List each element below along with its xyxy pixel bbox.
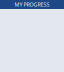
staticText: MY PROGRESS (14, 1, 49, 8)
